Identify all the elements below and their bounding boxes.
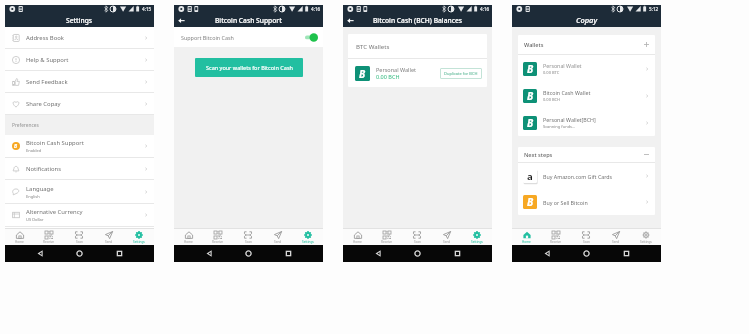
staticText: B bbox=[527, 116, 534, 130]
button[interactable]: Send bbox=[432, 229, 462, 245]
staticText: 0.00 BCH bbox=[376, 73, 400, 80]
button[interactable]: B bbox=[355, 59, 482, 87]
button[interactable]: Settings bbox=[631, 229, 661, 245]
button[interactable]: Language bbox=[5, 180, 154, 204]
button[interactable]: Support Bitcoin Cash bbox=[181, 27, 318, 47]
staticText: Enabled bbox=[26, 148, 42, 153]
button[interactable]: Home bbox=[244, 249, 253, 258]
staticText: Share Copay bbox=[26, 100, 61, 108]
staticText: Bitcoin Cash Support bbox=[215, 16, 282, 25]
button[interactable]: Home bbox=[582, 249, 591, 258]
button[interactable]: Duplicate for BCH bbox=[444, 71, 478, 76]
button[interactable]: Settings bbox=[293, 229, 323, 245]
button[interactable]: Back bbox=[36, 249, 45, 258]
button[interactable]: Send bbox=[601, 229, 631, 245]
button[interactable]: B bbox=[523, 55, 650, 82]
staticText: Support Bitcoin Cash bbox=[181, 34, 305, 41]
button[interactable]: Next steps bbox=[524, 147, 649, 162]
button[interactable]: Settings bbox=[462, 229, 492, 245]
staticText: Buy Amazon.com Gift Cards bbox=[543, 173, 644, 180]
staticText: Notifications bbox=[26, 165, 62, 173]
staticText: Help & Support bbox=[26, 56, 69, 64]
staticText: Home bbox=[353, 240, 362, 244]
button[interactable]: Home bbox=[512, 229, 541, 245]
button[interactable]: Home bbox=[174, 229, 203, 245]
staticText: Duplicate for BCH bbox=[444, 71, 478, 76]
staticText: 0.00 BCH bbox=[543, 97, 561, 102]
button[interactable]: Recents bbox=[622, 249, 631, 258]
staticText: B bbox=[527, 195, 534, 209]
button[interactable]: B bbox=[523, 189, 650, 215]
staticText: Send bbox=[612, 240, 620, 244]
button[interactable]: Scan bbox=[571, 229, 601, 245]
staticText: Bitcoin Cash Support bbox=[26, 139, 84, 147]
staticText: BTC Wallets bbox=[356, 42, 390, 50]
staticText: Settings bbox=[302, 240, 314, 244]
button[interactable]: Back bbox=[345, 15, 355, 25]
staticText: Settings bbox=[133, 240, 145, 244]
staticText: B bbox=[527, 89, 534, 103]
button[interactable]: Settings bbox=[124, 229, 154, 245]
button[interactable]: Alternative Currency bbox=[5, 204, 154, 227]
button[interactable]: B bbox=[523, 82, 650, 109]
button[interactable]: Home bbox=[343, 229, 372, 245]
staticText: 0.00 BTC bbox=[543, 70, 560, 75]
button[interactable]: Scan bbox=[64, 229, 94, 245]
staticText: Personal Wallet[BCH] bbox=[543, 116, 596, 123]
staticText: a bbox=[527, 170, 533, 183]
button[interactable]: Scan bbox=[233, 229, 263, 245]
button[interactable]: Send bbox=[263, 229, 293, 245]
staticText: Alternative Currency bbox=[26, 208, 83, 216]
staticText: Scan your wallets for Bitcoin Cash bbox=[206, 64, 293, 71]
button[interactable]: Receive bbox=[34, 229, 64, 245]
button[interactable]: B bbox=[523, 109, 650, 136]
button[interactable]: Back bbox=[176, 15, 186, 25]
staticText: Wallets bbox=[524, 41, 644, 49]
staticText: Scan bbox=[76, 240, 83, 244]
staticText: Home bbox=[522, 240, 531, 244]
button[interactable]: Share Copay bbox=[5, 93, 154, 115]
button[interactable]: Recents bbox=[115, 249, 124, 258]
button[interactable]: Send Feedback bbox=[5, 71, 154, 93]
staticText: Receive bbox=[550, 240, 562, 244]
staticText: Copay bbox=[576, 15, 598, 25]
button[interactable]: Send bbox=[94, 229, 124, 245]
button[interactable]: Receive bbox=[203, 229, 233, 245]
button[interactable]: Home bbox=[5, 229, 34, 245]
staticText: Send bbox=[274, 240, 282, 244]
button[interactable]: Address Book bbox=[5, 27, 154, 49]
button[interactable]: Receive bbox=[372, 229, 402, 245]
button[interactable]: Recents bbox=[284, 249, 293, 258]
button[interactable]: Home bbox=[75, 249, 84, 258]
staticText: Send bbox=[105, 240, 113, 244]
button[interactable]: Home bbox=[413, 249, 422, 258]
button[interactable]: Receive bbox=[541, 229, 571, 245]
button[interactable]: Scan your wallets for Bitcoin Cash bbox=[195, 58, 303, 77]
staticText: Buy or Sell Bitcoin bbox=[543, 199, 644, 206]
staticText: 4:16 bbox=[480, 6, 490, 12]
button[interactable]: Back bbox=[543, 249, 552, 258]
staticText: Scanning funds... bbox=[543, 124, 576, 129]
button[interactable]: Back bbox=[374, 249, 383, 258]
button[interactable]: Back bbox=[205, 249, 214, 258]
staticText: Send Feedback bbox=[26, 78, 68, 86]
staticText: Receive bbox=[43, 240, 55, 244]
button[interactable]: a bbox=[523, 163, 650, 189]
staticText: Receive bbox=[212, 240, 224, 244]
staticText: Settings bbox=[640, 240, 652, 244]
staticText: B bbox=[14, 143, 18, 150]
staticText: US Dollar bbox=[26, 217, 44, 222]
button[interactable]: Scan bbox=[402, 229, 432, 245]
staticText: 5:12 bbox=[649, 6, 659, 12]
button[interactable]: Wallets bbox=[524, 35, 649, 54]
staticText: Home bbox=[184, 240, 193, 244]
button[interactable]: B bbox=[5, 135, 154, 158]
staticText: Language bbox=[26, 185, 54, 193]
staticText: Scan bbox=[414, 240, 421, 244]
staticText: English bbox=[26, 194, 40, 199]
button[interactable]: Recents bbox=[453, 249, 462, 258]
staticText: Scan bbox=[245, 240, 252, 244]
button[interactable]: Notifications bbox=[5, 158, 154, 180]
button[interactable]: Help & Support bbox=[5, 49, 154, 71]
staticText: B bbox=[359, 67, 366, 81]
